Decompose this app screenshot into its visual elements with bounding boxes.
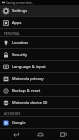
button[interactable]: Backup & reset bbox=[0, 85, 79, 96]
button[interactable]: Home bbox=[33, 129, 47, 140]
staticText: Apps bbox=[12, 20, 22, 25]
staticText: Google bbox=[12, 120, 26, 125]
staticText: PERSONAL bbox=[4, 32, 20, 36]
button[interactable]: Motorola device ID bbox=[0, 97, 79, 108]
staticText: Location bbox=[12, 40, 29, 45]
button[interactable]: Apps bbox=[0, 17, 79, 28]
button[interactable]: Language & input bbox=[0, 61, 79, 72]
staticText: Saving screenshot... bbox=[6, 1, 35, 5]
staticText: Settings bbox=[12, 8, 28, 13]
button[interactable]: Settings bbox=[0, 5, 79, 16]
staticText: Motorola privacy bbox=[12, 76, 44, 81]
button[interactable]: Google bbox=[0, 117, 79, 128]
button[interactable]: Motorola privacy bbox=[0, 73, 79, 84]
staticText: Backup & reset bbox=[12, 88, 41, 93]
staticText: ACCOUNTS bbox=[4, 112, 21, 116]
button[interactable]: Location bbox=[0, 37, 79, 48]
staticText: Security bbox=[12, 52, 28, 57]
staticText: Language & input bbox=[12, 64, 46, 69]
button[interactable]: Back bbox=[9, 129, 23, 140]
button[interactable]: Recent apps bbox=[56, 129, 70, 140]
button[interactable]: Security bbox=[0, 49, 79, 60]
staticText: Motorola device ID bbox=[12, 100, 48, 105]
